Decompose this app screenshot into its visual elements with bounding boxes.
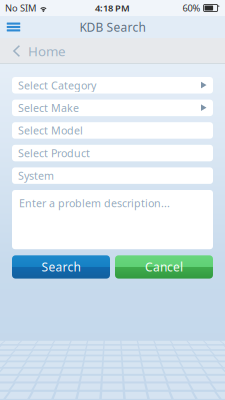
button[interactable]: Select Product — [12, 145, 213, 161]
staticText: No SIM — [5, 2, 36, 14]
staticText: KDB Search — [79, 19, 145, 35]
staticText: System — [18, 169, 54, 183]
button[interactable]: Home — [0, 38, 76, 64]
staticText: Select Category — [18, 78, 96, 92]
staticText: Cancel — [145, 259, 183, 275]
staticText: Enter a problem description... — [19, 196, 170, 210]
staticText: Search — [41, 259, 80, 275]
button[interactable]: Select Category — [12, 77, 213, 93]
button[interactable]: Search — [12, 255, 110, 279]
button[interactable]: Menu — [0, 16, 27, 38]
staticText: Select Product — [18, 146, 90, 160]
button[interactable]: Cancel — [115, 255, 213, 279]
button[interactable]: Select Make — [12, 100, 213, 116]
staticText: Select Make — [18, 101, 79, 115]
staticText: Select Model — [18, 123, 83, 138]
button[interactable]: Select Model — [12, 122, 213, 139]
staticText: Home — [28, 42, 66, 60]
button[interactable]: System — [12, 167, 213, 184]
staticText: 4:18 PM — [95, 2, 130, 14]
staticText: 60% — [183, 2, 201, 14]
